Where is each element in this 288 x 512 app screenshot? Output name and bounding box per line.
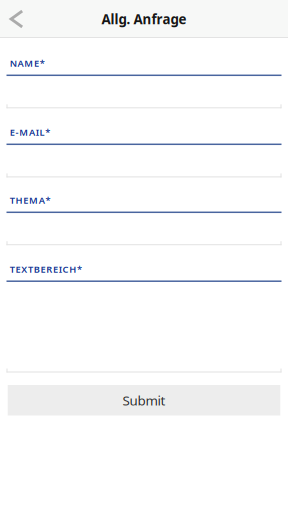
staticText: THEMA*	[10, 194, 50, 206]
staticText: E-MAIL*	[10, 126, 50, 138]
staticText: Allg. Anfrage	[101, 10, 186, 28]
button[interactable]: Back	[0, 0, 32, 38]
button[interactable]: Submit	[8, 385, 280, 415]
staticText: Submit	[122, 391, 165, 409]
staticText: NAME*	[10, 57, 45, 69]
staticText: TEXTBEREICH*	[10, 263, 82, 275]
